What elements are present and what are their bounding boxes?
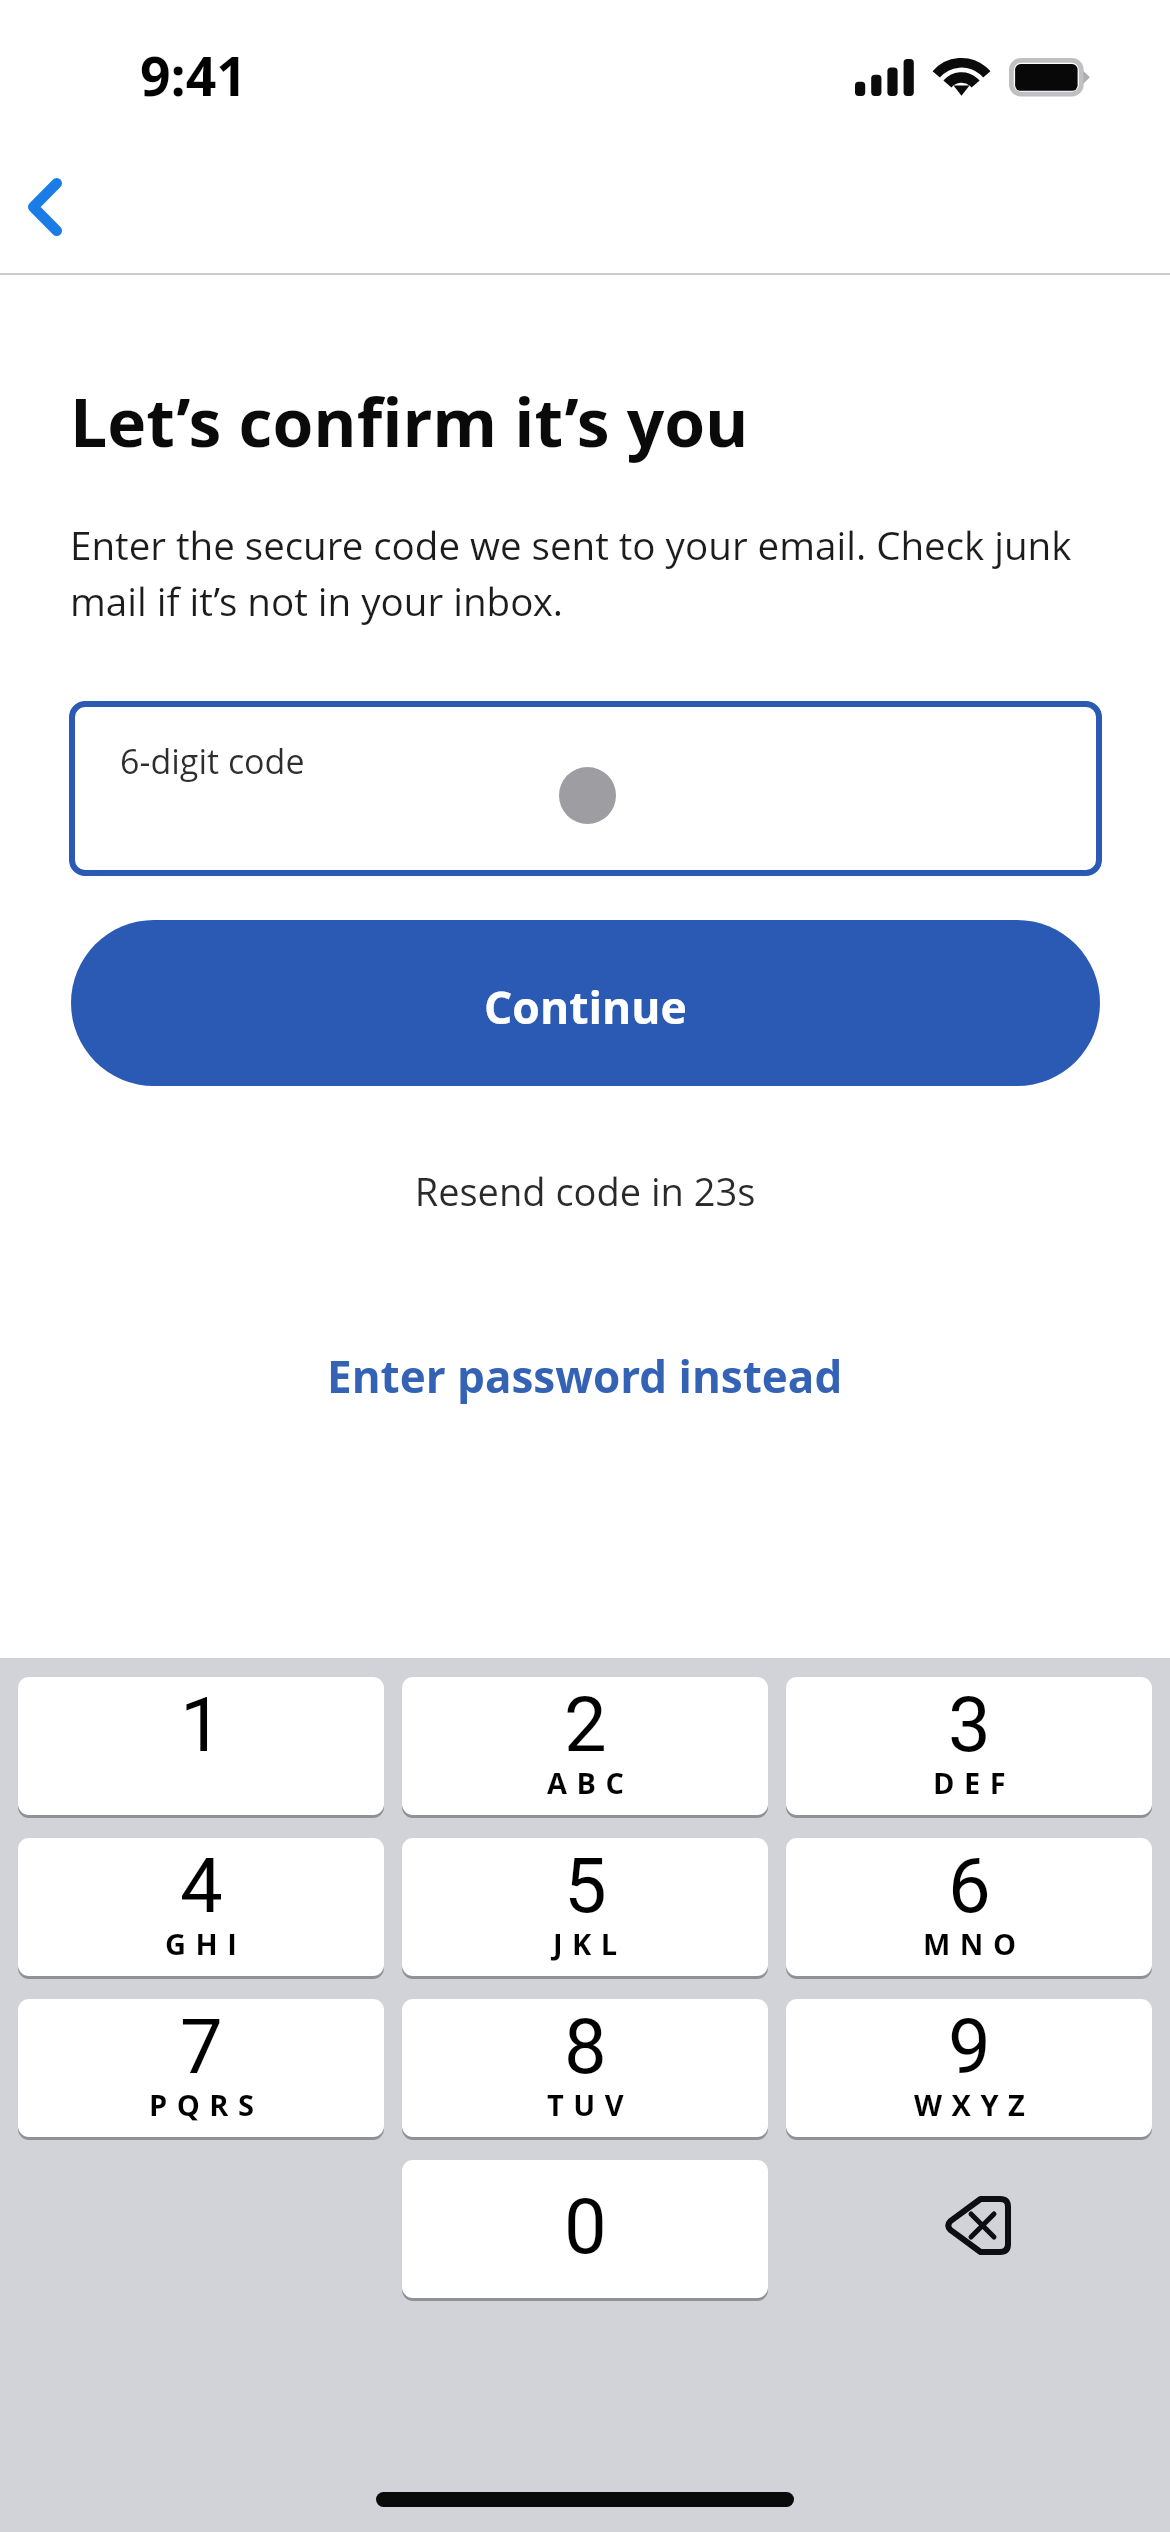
button[interactable]: 2 <box>402 1677 768 1815</box>
staticText: 6-digit code <box>120 738 305 784</box>
button[interactable]: 4 <box>18 1838 384 1976</box>
button[interactable]: Delete <box>794 2156 1160 2294</box>
staticText: WXYZ <box>914 2085 1035 2124</box>
staticText: 1 <box>180 1680 223 1769</box>
staticText: 6 <box>948 1841 991 1930</box>
button[interactable]: 3 <box>786 1677 1152 1815</box>
staticText: GHI <box>165 1924 247 1963</box>
staticText: DEF <box>933 1763 1016 1802</box>
button[interactable]: 6 <box>786 1838 1152 1976</box>
button[interactable]: 5 <box>402 1838 768 1976</box>
staticText: Let’s confirm it’s you <box>70 376 749 466</box>
staticText: Continue <box>484 976 687 1037</box>
staticText: 7 <box>180 2002 223 2091</box>
staticText: JKL <box>553 1924 627 1963</box>
staticText: Enter password instead <box>327 1346 843 1406</box>
staticText: 2 <box>564 1680 607 1769</box>
staticText: MNO <box>923 1924 1026 1963</box>
staticText: ABC <box>547 1763 634 1802</box>
staticText: 9:41 <box>140 39 247 112</box>
staticText: 9 <box>948 2002 991 2091</box>
button[interactable]: 8 <box>402 1999 768 2137</box>
button[interactable]: 0 <box>402 2160 768 2298</box>
staticText: 5 <box>564 1841 607 1930</box>
button[interactable]: Back <box>0 158 96 254</box>
button[interactable]: 6-digit code <box>69 701 1102 876</box>
staticText: 4 <box>180 1841 223 1930</box>
staticText: Resend code in 23s <box>0 1165 1170 1217</box>
staticText: Enter the secure code we sent to your em… <box>70 519 1110 627</box>
button[interactable]: 1 <box>18 1677 384 1815</box>
staticText: 8 <box>564 2002 607 2091</box>
staticText: TUV <box>547 2085 634 2124</box>
button[interactable]: 9 <box>786 1999 1152 2137</box>
button[interactable]: 7 <box>18 1999 384 2137</box>
staticText: 0 <box>564 2182 607 2271</box>
button[interactable]: Continue <box>71 920 1100 1086</box>
staticText: 3 <box>948 1680 991 1769</box>
staticText: PQRS <box>149 2085 264 2124</box>
button[interactable]: Enter password instead <box>303 1330 867 1422</box>
